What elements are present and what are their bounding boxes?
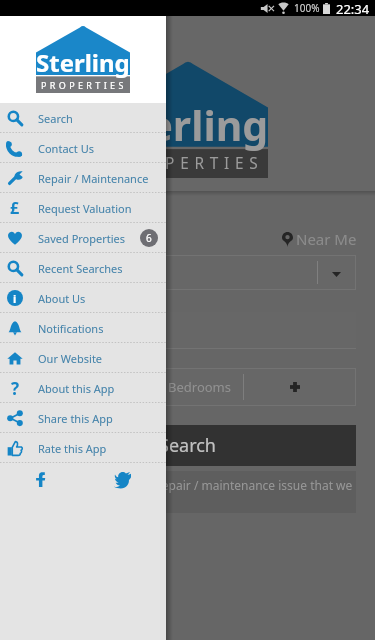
button[interactable]: Saved Properties <box>0 223 166 253</box>
staticText: Our Website <box>38 351 103 366</box>
button[interactable]: Twitter <box>82 463 164 495</box>
staticText: Report a repair / maintenance issue that… <box>106 477 353 493</box>
button[interactable]: Rate this App <box>0 433 166 463</box>
staticText: Repair / Maintenance <box>38 171 149 186</box>
button[interactable]: Share this App <box>0 403 166 433</box>
button[interactable]: £ <box>0 193 166 223</box>
staticText: About this App <box>38 381 115 396</box>
staticText: Search <box>159 433 216 458</box>
button[interactable]: Search <box>0 103 166 133</box>
button[interactable]: Notifications <box>0 313 166 343</box>
staticText: 100% <box>294 1 320 15</box>
staticText: 22:34 <box>336 0 370 16</box>
staticText: PROPERTIES <box>117 153 264 174</box>
staticText: Sterling <box>36 46 130 79</box>
button[interactable]: Recent Searches <box>0 253 166 283</box>
staticText: Sterling <box>108 97 269 153</box>
staticText: Share this App <box>38 411 113 426</box>
staticText: 6 <box>146 231 152 245</box>
staticText: PROPERTIES <box>41 79 127 91</box>
button[interactable]: ? <box>0 373 166 403</box>
staticText: ? <box>11 377 20 400</box>
staticText: Saved Properties <box>38 231 126 246</box>
button[interactable]: Search <box>19 425 356 466</box>
button[interactable]: Our Website <box>0 343 166 373</box>
staticText: Search <box>38 111 73 126</box>
staticText: Near Me <box>296 229 357 249</box>
staticText: i <box>13 291 17 306</box>
staticText: Recent Searches <box>38 261 123 276</box>
staticText: Bedrooms <box>168 378 231 396</box>
staticText: Contact Us <box>38 141 94 156</box>
staticText: Notifications <box>38 321 104 336</box>
button[interactable]: Facebook <box>0 463 82 495</box>
staticText: Rate this App <box>38 441 107 456</box>
staticText: £ <box>10 197 20 219</box>
staticText: Request Valuation <box>38 201 132 216</box>
staticText: About Us <box>38 291 86 306</box>
button[interactable]: Contact Us <box>0 133 166 163</box>
button[interactable]: Repair / Maintenance <box>0 163 166 193</box>
button[interactable]: i <box>0 283 166 313</box>
